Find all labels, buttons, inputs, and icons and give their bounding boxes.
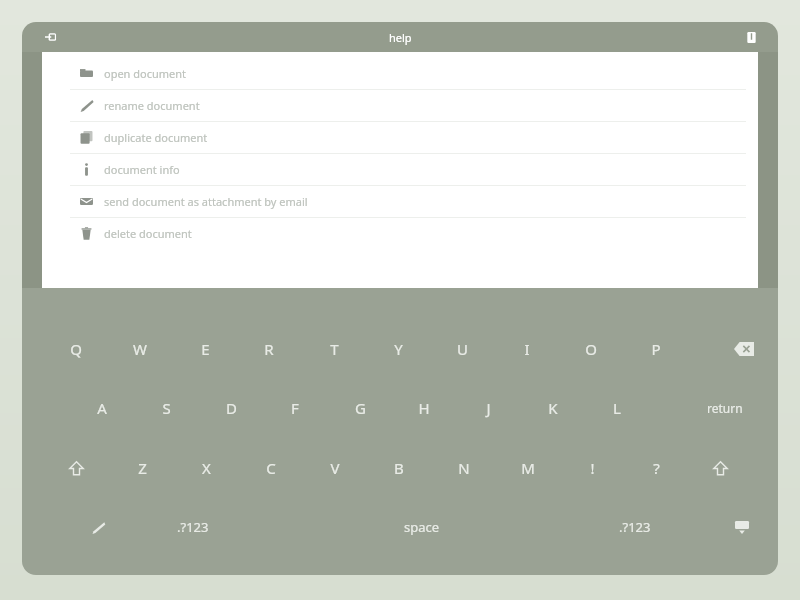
staticText: duplicate document	[104, 130, 208, 145]
staticText: Z	[138, 458, 147, 478]
button[interactable]: V	[313, 451, 357, 485]
button[interactable]: open document	[42, 58, 758, 89]
button[interactable]: Hide keyboard	[720, 510, 764, 544]
staticText: V	[330, 458, 340, 478]
staticText: I	[524, 339, 530, 359]
button[interactable]: M	[506, 451, 550, 485]
staticText: Y	[394, 339, 403, 359]
button[interactable]: L	[595, 391, 639, 425]
button[interactable]: P	[634, 332, 678, 366]
staticText: U	[457, 339, 468, 359]
button[interactable]: W	[118, 332, 162, 366]
staticText: .?123	[177, 518, 209, 536]
staticText: B	[394, 458, 404, 478]
button[interactable]: return	[682, 391, 768, 425]
staticText: E	[201, 339, 210, 359]
button[interactable]: ?	[634, 451, 678, 485]
button[interactable]: O	[569, 332, 613, 366]
staticText: ?	[653, 458, 660, 478]
staticText: W	[133, 339, 147, 359]
button[interactable]: delete document	[42, 217, 758, 249]
staticText: N	[458, 458, 470, 478]
staticText: X	[202, 458, 211, 478]
button[interactable]: Close	[38, 24, 64, 50]
button[interactable]: S	[144, 391, 188, 425]
staticText: .?123	[619, 518, 651, 536]
staticText: !	[590, 458, 595, 478]
button[interactable]: Shift	[54, 451, 98, 485]
staticText: L	[613, 398, 621, 418]
staticText: G	[355, 398, 366, 418]
staticText: Q	[70, 339, 82, 359]
button[interactable]: document info	[42, 153, 758, 185]
button[interactable]: H	[402, 391, 446, 425]
button[interactable]: space	[362, 510, 482, 544]
staticText: M	[521, 458, 535, 478]
button[interactable]: F	[273, 391, 317, 425]
button[interactable]: A	[80, 391, 124, 425]
staticText: K	[548, 398, 558, 418]
staticText: S	[162, 398, 171, 418]
button[interactable]: Backspace	[722, 332, 766, 366]
button[interactable]: X	[184, 451, 228, 485]
staticText: return	[707, 400, 743, 416]
button[interactable]: rename document	[42, 89, 758, 121]
staticText: delete document	[104, 226, 192, 241]
staticText: space	[404, 518, 440, 536]
button[interactable]: C	[249, 451, 293, 485]
button[interactable]: R	[247, 332, 291, 366]
staticText: help	[389, 30, 412, 45]
button[interactable]: Z	[120, 451, 164, 485]
staticText: H	[418, 398, 430, 418]
staticText: open document	[104, 66, 187, 81]
staticText: A	[97, 398, 107, 418]
button[interactable]: N	[442, 451, 486, 485]
button[interactable]: U	[440, 332, 484, 366]
button[interactable]: .?123	[592, 510, 678, 544]
staticText: O	[585, 339, 597, 359]
button[interactable]: G	[338, 391, 382, 425]
button[interactable]: Bookmarks	[738, 24, 764, 50]
button[interactable]: B	[377, 451, 421, 485]
staticText: rename document	[104, 98, 200, 113]
button[interactable]: duplicate document	[42, 121, 758, 153]
staticText: D	[226, 398, 237, 418]
button[interactable]: T	[312, 332, 356, 366]
staticText: J	[486, 398, 491, 418]
staticText: F	[291, 398, 299, 418]
button[interactable]: D	[209, 391, 253, 425]
button[interactable]: Shift	[698, 451, 742, 485]
staticText: document info	[104, 162, 180, 177]
button[interactable]: Q	[54, 332, 98, 366]
button[interactable]: J	[466, 391, 510, 425]
button[interactable]: send document as attachment by email	[42, 185, 758, 217]
button[interactable]: .?123	[150, 510, 236, 544]
button[interactable]: K	[531, 391, 575, 425]
staticText: R	[264, 339, 274, 359]
button[interactable]: E	[183, 332, 227, 366]
staticText: T	[330, 339, 339, 359]
button[interactable]: Handwriting	[76, 510, 120, 544]
staticText: P	[651, 339, 661, 359]
button[interactable]: Y	[376, 332, 420, 366]
button[interactable]: !	[570, 451, 614, 485]
staticText: send document as attachment by email	[104, 194, 308, 209]
button[interactable]: I	[505, 332, 549, 366]
staticText: C	[266, 458, 276, 478]
